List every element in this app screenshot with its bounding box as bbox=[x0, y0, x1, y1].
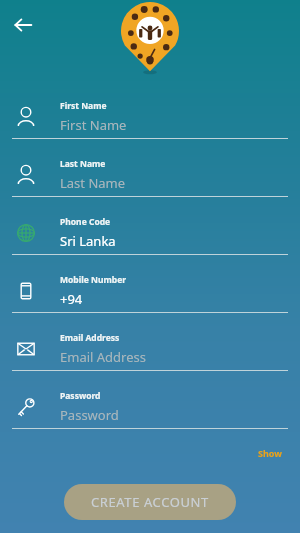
button[interactable]: Back bbox=[6, 8, 40, 42]
staticText: Sri Lanka bbox=[60, 232, 116, 250]
button[interactable]: Show bbox=[254, 445, 286, 461]
staticText: Last Name bbox=[60, 174, 126, 192]
staticText: Email Address bbox=[60, 348, 146, 366]
staticText: Mobile Number bbox=[60, 274, 127, 286]
staticText: Email Address bbox=[60, 332, 120, 344]
staticText: Last Name bbox=[60, 158, 106, 170]
button[interactable]: Email Address bbox=[0, 327, 300, 385]
staticText: Password bbox=[60, 406, 119, 424]
button[interactable]: Last Name bbox=[0, 153, 300, 211]
button[interactable]: Password bbox=[0, 385, 300, 443]
button[interactable]: First Name bbox=[0, 95, 300, 153]
staticText: +94 bbox=[60, 290, 83, 308]
staticText: First Name bbox=[60, 116, 127, 134]
button[interactable]: Phone Code bbox=[0, 211, 300, 269]
staticText: CREATE ACCOUNT bbox=[91, 493, 209, 511]
staticText: Phone Code bbox=[60, 216, 111, 228]
button[interactable]: CREATE ACCOUNT bbox=[64, 484, 236, 520]
staticText: Show bbox=[258, 447, 282, 459]
staticText: Password bbox=[60, 390, 101, 402]
button[interactable]: Mobile Number bbox=[0, 269, 300, 327]
staticText: First Name bbox=[60, 100, 107, 112]
